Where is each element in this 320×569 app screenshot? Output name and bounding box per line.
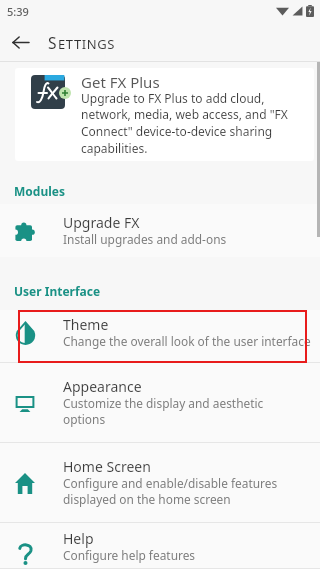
button[interactable]: Help (0, 523, 320, 569)
staticText: Get FX Plus (81, 72, 160, 92)
staticText: Help (63, 529, 94, 548)
staticText: S (48, 32, 58, 53)
staticText: Configure and enable/disable features di… (63, 475, 319, 508)
staticText: Home Screen (63, 457, 151, 476)
staticText: Modules (14, 183, 65, 199)
button[interactable]: Appearance (0, 363, 320, 443)
staticText: Theme (63, 315, 109, 334)
button[interactable]: Back (0, 22, 40, 62)
staticText: 5:39 (7, 4, 29, 19)
staticText: Upgrade FX (63, 213, 140, 232)
button[interactable]: Upgrade FX (0, 204, 320, 257)
staticText: ETTINGS (58, 35, 116, 53)
staticText: Change the overall look of the user inte… (63, 333, 311, 349)
button[interactable]: Theme (0, 310, 320, 363)
button[interactable]: Get FX Plus (15, 68, 314, 161)
staticText: Upgrade to FX Plus to add cloud, network… (81, 90, 306, 156)
staticText: Configure help features (63, 547, 196, 563)
staticText: User Interface (14, 283, 101, 299)
staticText: Appearance (63, 377, 142, 396)
staticText: Install upgrades and add-ons (63, 231, 227, 247)
button[interactable]: Home Screen (0, 443, 320, 523)
staticText: Customize the display and aesthetic opti… (63, 395, 279, 428)
